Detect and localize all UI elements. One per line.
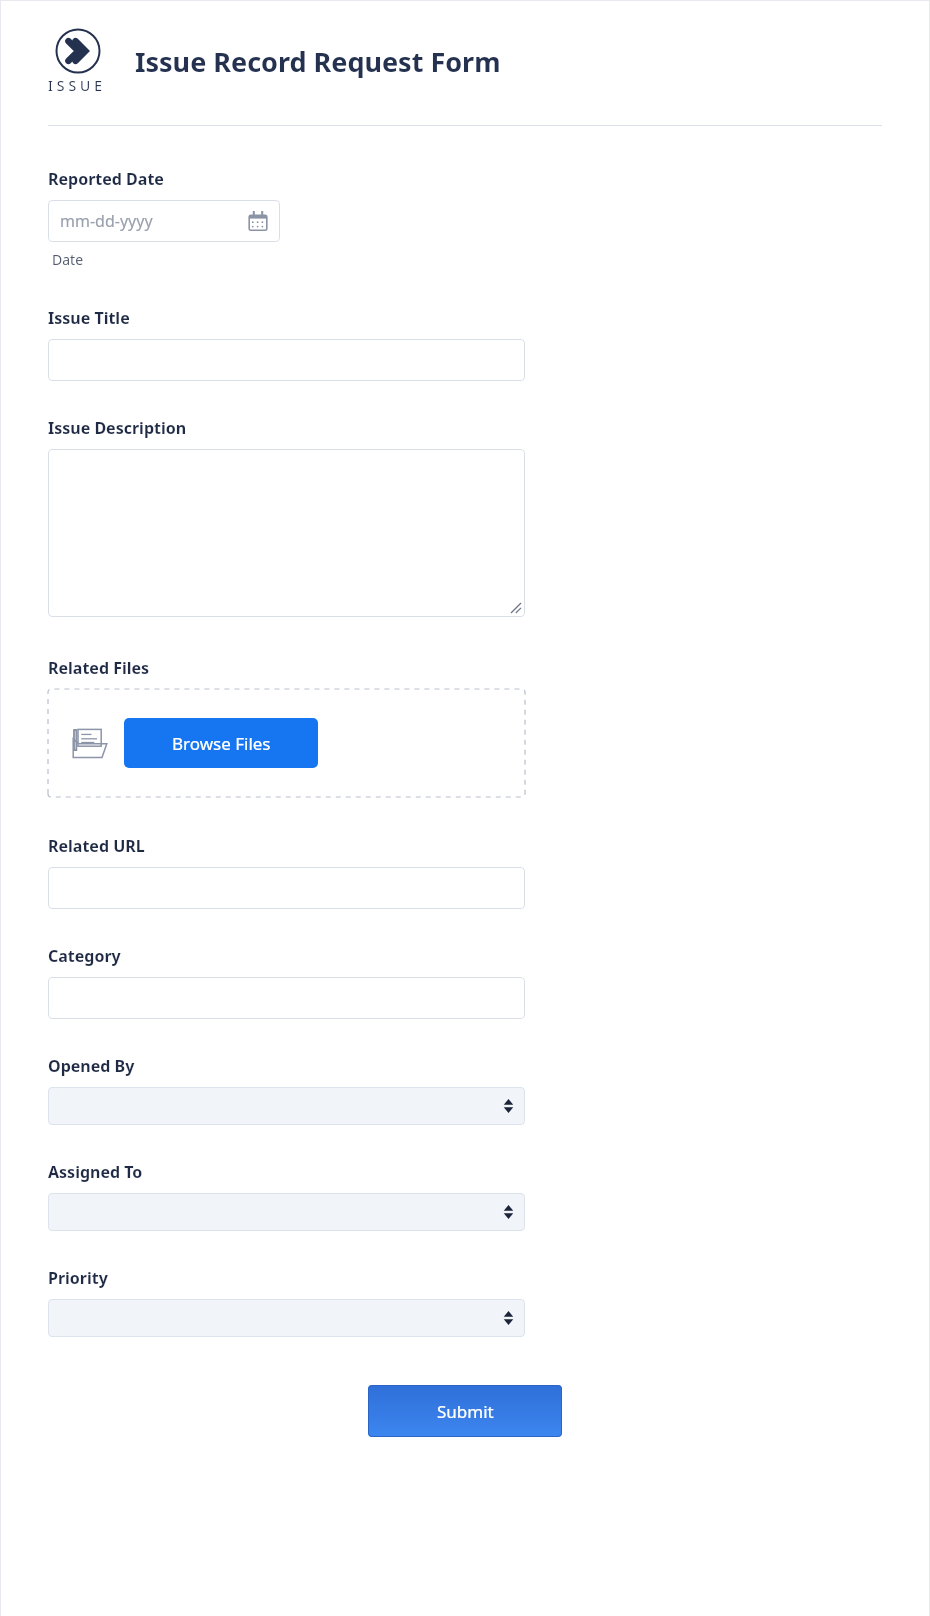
button[interactable] [48,449,525,617]
staticText: Issue Title [48,307,130,329]
staticText: Issue Description [48,417,187,439]
button[interactable]: Browse Files [124,718,318,768]
staticText: Browse Files [172,732,271,755]
button[interactable]: Open calendar [248,211,268,231]
button[interactable]: Select option [48,1087,525,1125]
button[interactable]: mm-dd-yyyy [48,200,280,242]
staticText: Date [52,250,84,269]
staticText: Submit [437,1400,494,1423]
button[interactable] [48,867,525,909]
button[interactable]: Select option [48,1193,525,1231]
staticText: Category [48,945,121,967]
staticText: Opened By [48,1055,135,1077]
staticText: Issue Record Request Form [135,43,501,80]
button[interactable] [48,977,525,1019]
staticText: ISSUE [48,76,107,95]
button[interactable]: Submit [368,1385,562,1437]
staticText: Priority [48,1267,108,1289]
staticText: Related Files [48,657,150,679]
button[interactable] [48,339,525,381]
button[interactable]: Select option [48,1299,525,1337]
staticText: mm-dd-yyyy [60,210,153,232]
staticText: Reported Date [48,168,164,190]
staticText: Assigned To [48,1161,143,1183]
staticText: Related URL [48,835,145,857]
